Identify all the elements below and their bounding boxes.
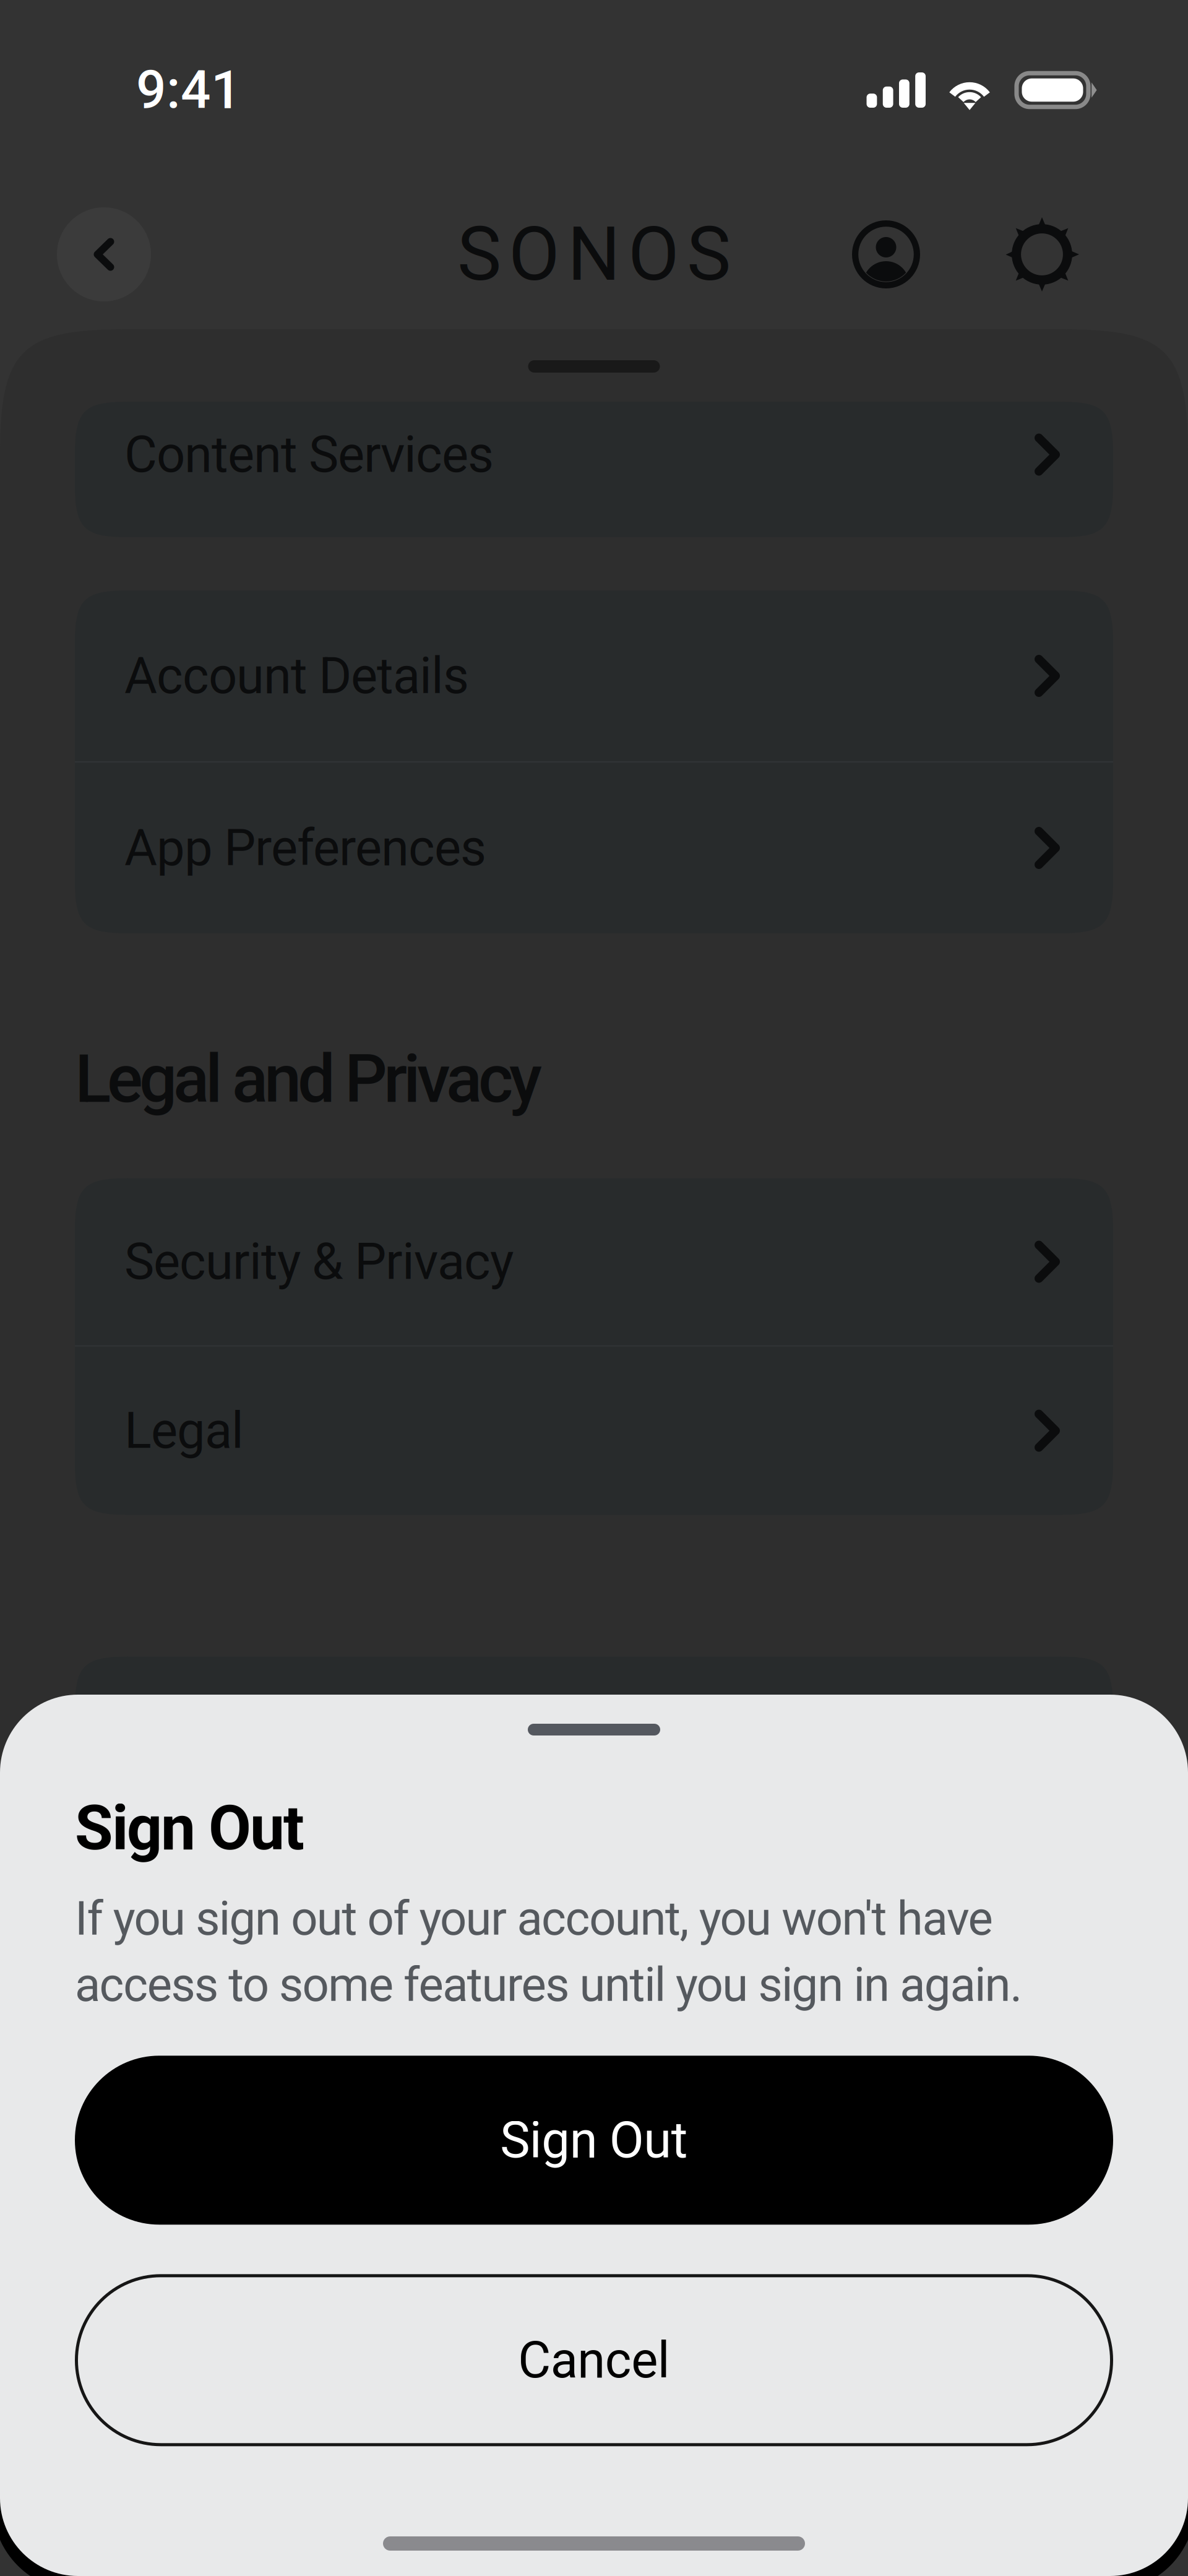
button[interactable]: App Preferences (75, 763, 1113, 933)
staticText: Legal and Privacy (75, 1040, 542, 1118)
staticText: If you sign out of your account, you won… (75, 1891, 1022, 2012)
staticText: Content Services (124, 425, 494, 484)
staticText: Legal (124, 1401, 244, 1460)
button[interactable]: Account Details (75, 590, 1113, 761)
button[interactable]: Sign Out (75, 2056, 1113, 2225)
staticText: Security & Privacy (124, 1232, 514, 1291)
staticText: 9:41 (136, 59, 241, 121)
button[interactable]: Sign Out (75, 1657, 1113, 1827)
staticText: Sign Out (75, 1792, 304, 1864)
staticText: App Preferences (124, 818, 486, 877)
staticText: Account Details (124, 646, 469, 705)
button[interactable]: Content Services (75, 402, 1113, 537)
button[interactable]: Back (57, 207, 151, 301)
button[interactable]: Account (839, 207, 933, 301)
button[interactable]: Legal (75, 1347, 1113, 1515)
staticText: Sign Out (500, 2111, 688, 2170)
button[interactable]: Cancel (75, 2274, 1113, 2446)
button[interactable]: Security & Privacy (75, 1178, 1113, 1345)
button[interactable]: Settings (995, 207, 1089, 301)
staticText: Cancel (518, 2331, 670, 2390)
staticText: SONOS (457, 211, 731, 298)
